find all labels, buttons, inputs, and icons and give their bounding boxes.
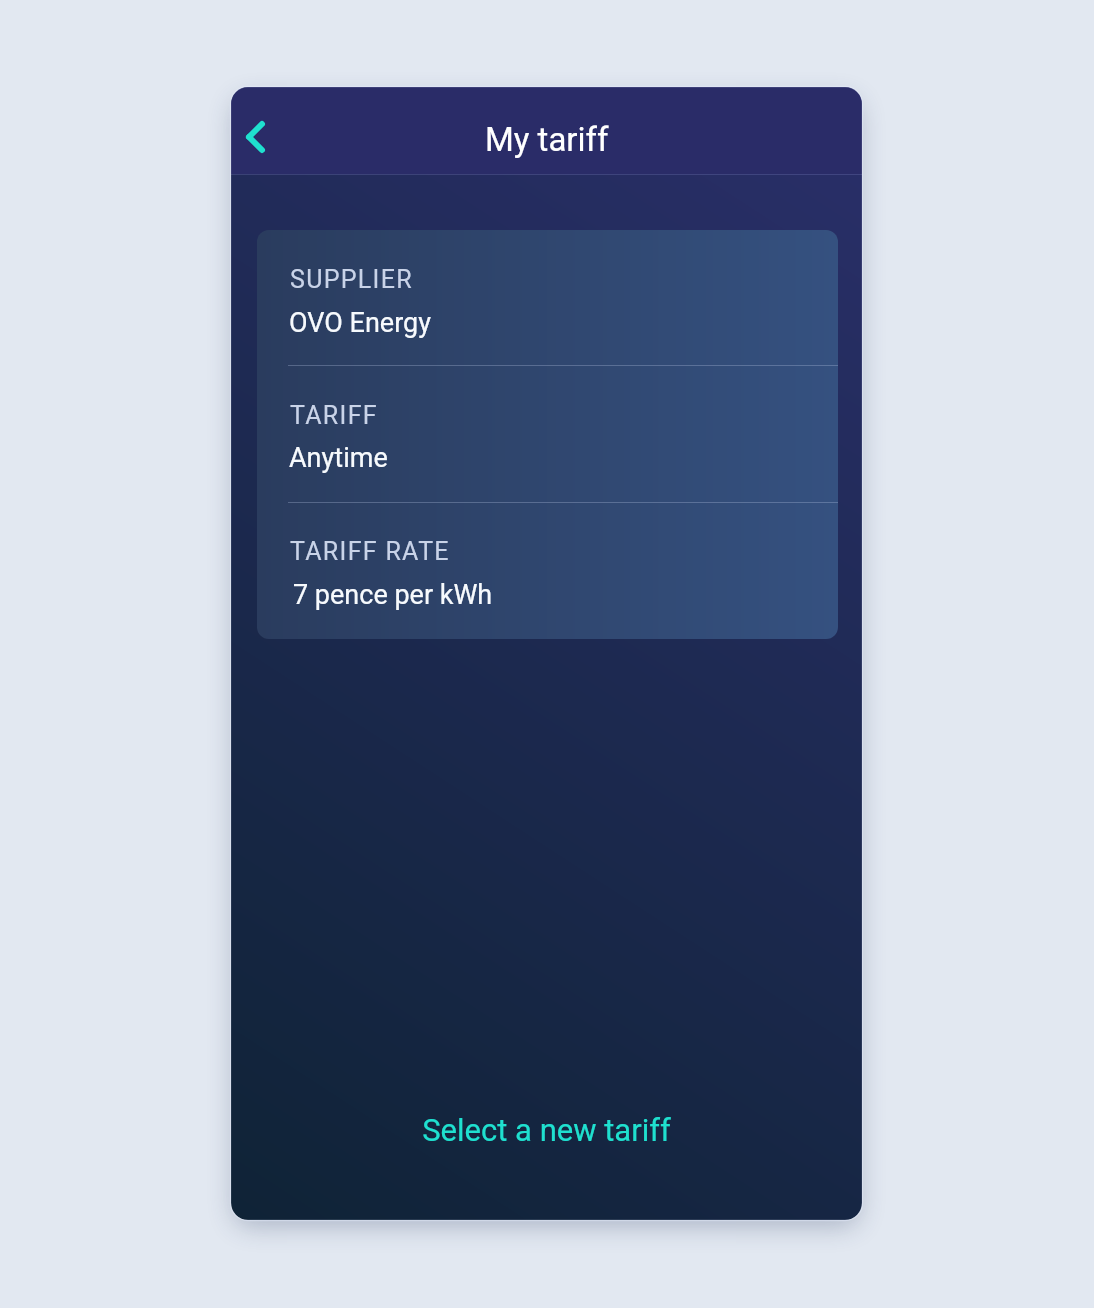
staticText: TARIFF [290, 401, 378, 430]
staticText: TARIFF RATE [290, 537, 450, 566]
staticText: Anytime [289, 442, 388, 474]
button[interactable]: Back [231, 109, 283, 165]
staticText: SUPPLIER [290, 265, 413, 294]
staticText: My tariff [485, 120, 609, 159]
staticText: 7 pence per kWh [293, 579, 493, 611]
button[interactable]: Select a new tariff [231, 1079, 862, 1181]
staticText: Select a new tariff [422, 1112, 671, 1148]
staticText: OVO Energy [289, 307, 431, 339]
